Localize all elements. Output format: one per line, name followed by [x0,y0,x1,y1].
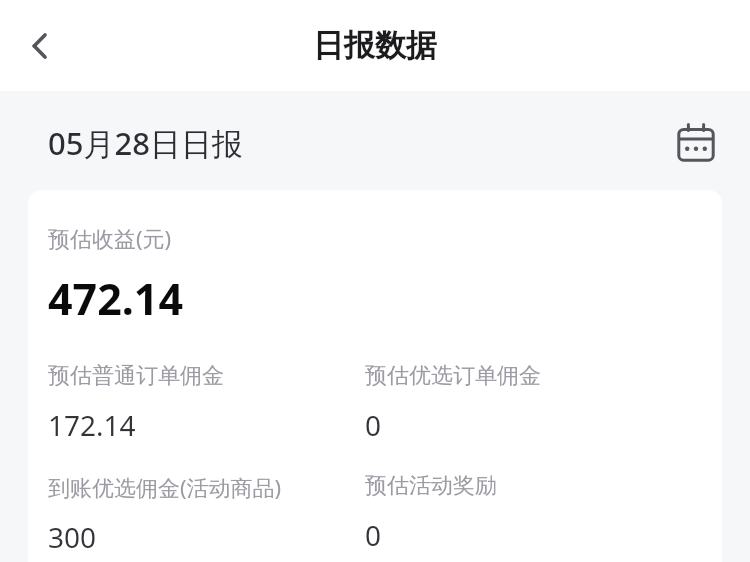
button[interactable]: Select date [670,117,722,169]
staticText: 0 [365,516,382,554]
staticText: 预估活动奖励 [365,472,497,500]
button[interactable]: 预估收益(元) [28,190,722,562]
staticText: 472.14 [48,269,184,328]
staticText: 预估普通订单佣金 [48,362,224,390]
staticText: 预估优选订单佣金 [365,362,541,390]
button[interactable]: Back [14,18,70,74]
staticText: 172.14 [48,406,136,444]
staticText: 05月28日日报 [48,122,243,164]
staticText: 预估收益(元) [48,223,172,253]
staticText: 300 [48,518,97,556]
staticText: 到账优选佣金(活动商品) [48,472,282,502]
staticText: 0 [365,406,382,444]
staticText: 日报数据 [313,26,437,65]
